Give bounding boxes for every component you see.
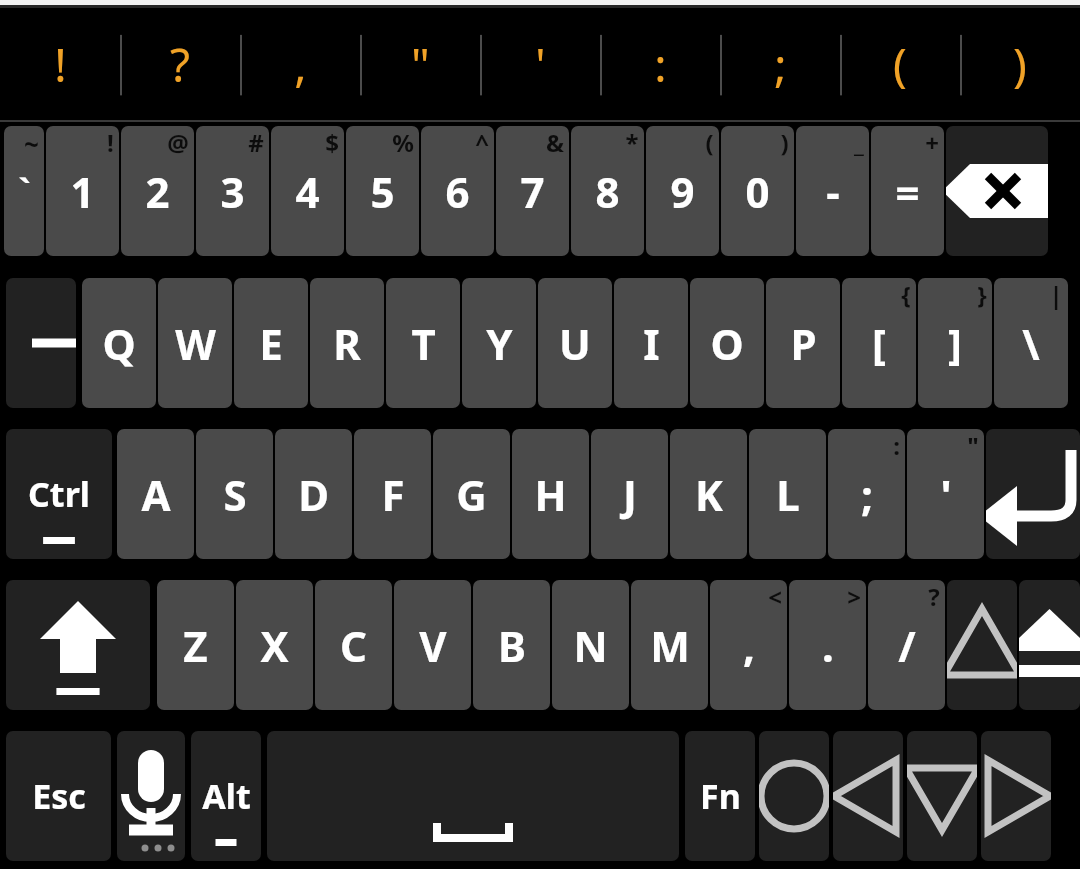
staticText: ~ bbox=[24, 126, 39, 161]
button[interactable]: Alt bbox=[191, 731, 261, 861]
button[interactable]: F bbox=[354, 429, 431, 559]
button[interactable]: $ bbox=[271, 126, 344, 256]
button[interactable]: " bbox=[907, 429, 984, 559]
staticText: T bbox=[411, 315, 436, 372]
button[interactable]: Tab bbox=[6, 278, 76, 408]
staticText: % bbox=[392, 126, 414, 159]
staticText: M bbox=[650, 617, 690, 674]
staticText: * bbox=[625, 126, 639, 159]
button[interactable]: V bbox=[394, 580, 471, 710]
button[interactable]: Up bbox=[947, 580, 1017, 710]
button[interactable]: Space bbox=[267, 731, 679, 861]
button[interactable]: A bbox=[117, 429, 194, 559]
button[interactable]: ) bbox=[721, 126, 794, 256]
staticText: B bbox=[498, 617, 526, 674]
button[interactable]: C bbox=[315, 580, 392, 710]
button[interactable]: Backspace bbox=[946, 126, 1048, 256]
staticText: H bbox=[534, 466, 567, 523]
staticText: I bbox=[643, 315, 660, 372]
button[interactable]: : bbox=[828, 429, 905, 559]
button[interactable]: } bbox=[918, 278, 992, 408]
button[interactable]: I bbox=[614, 278, 688, 408]
button[interactable]: T bbox=[386, 278, 460, 408]
button[interactable]: G bbox=[433, 429, 510, 559]
button[interactable]: & bbox=[496, 126, 569, 256]
button[interactable]: S bbox=[196, 429, 273, 559]
staticText: ; bbox=[774, 33, 787, 96]
button[interactable]: Caps lock bbox=[1019, 580, 1080, 710]
button[interactable]: " bbox=[360, 8, 480, 120]
button[interactable]: * bbox=[571, 126, 644, 256]
button[interactable]: H bbox=[512, 429, 589, 559]
button[interactable]: ( bbox=[840, 8, 960, 120]
button[interactable]: Fn bbox=[685, 731, 755, 861]
button[interactable]: ^ bbox=[421, 126, 494, 256]
staticText: A bbox=[141, 466, 171, 523]
staticText: , bbox=[294, 33, 307, 96]
button[interactable]: ; bbox=[720, 8, 840, 120]
button[interactable]: ) bbox=[960, 8, 1080, 120]
button[interactable]: ? bbox=[120, 8, 240, 120]
button[interactable]: Shift bbox=[6, 580, 150, 710]
button[interactable]: J bbox=[591, 429, 668, 559]
button[interactable]: ! bbox=[0, 8, 120, 120]
staticText: C bbox=[340, 617, 367, 674]
button[interactable]: { bbox=[842, 278, 916, 408]
button[interactable]: Voice input bbox=[117, 731, 185, 861]
button[interactable]: R bbox=[310, 278, 384, 408]
button[interactable]: | bbox=[994, 278, 1068, 408]
button[interactable]: Right bbox=[981, 731, 1051, 861]
staticText: J bbox=[623, 466, 637, 523]
button[interactable]: D bbox=[275, 429, 352, 559]
staticText: = bbox=[895, 163, 920, 220]
button[interactable]: ! bbox=[46, 126, 119, 256]
staticText: Ctrl bbox=[28, 471, 90, 517]
button[interactable]: Down bbox=[907, 731, 977, 861]
staticText: ' bbox=[940, 466, 952, 523]
button[interactable]: N bbox=[552, 580, 629, 710]
button[interactable]: : bbox=[600, 8, 720, 120]
staticText: ( bbox=[893, 33, 907, 96]
button[interactable]: @ bbox=[121, 126, 194, 256]
staticText: 2 bbox=[145, 163, 170, 220]
button[interactable]: U bbox=[538, 278, 612, 408]
button[interactable]: E bbox=[234, 278, 308, 408]
button[interactable]: Enter bbox=[986, 429, 1080, 559]
button[interactable]: L bbox=[749, 429, 826, 559]
button[interactable]: Y bbox=[462, 278, 536, 408]
button[interactable]: W bbox=[158, 278, 232, 408]
staticText: 1 bbox=[70, 163, 95, 220]
button[interactable]: ' bbox=[480, 8, 600, 120]
button[interactable]: Esc bbox=[6, 731, 111, 861]
staticText: ` bbox=[18, 168, 31, 214]
button[interactable]: , bbox=[240, 8, 360, 120]
button[interactable]: ( bbox=[646, 126, 719, 256]
button[interactable]: Ctrl bbox=[6, 429, 112, 559]
button[interactable]: K bbox=[670, 429, 747, 559]
button[interactable]: ? bbox=[868, 580, 945, 710]
staticText: ] bbox=[948, 315, 962, 372]
staticText: _ bbox=[854, 126, 864, 159]
button[interactable]: ~ bbox=[4, 126, 44, 256]
staticText: Z bbox=[183, 617, 208, 674]
button[interactable]: Q bbox=[82, 278, 156, 408]
staticText: ) bbox=[780, 126, 789, 159]
button[interactable]: < bbox=[710, 580, 787, 710]
button[interactable]: _ bbox=[796, 126, 869, 256]
staticText: & bbox=[546, 126, 564, 159]
staticText: | bbox=[1049, 278, 1063, 311]
staticText: - bbox=[826, 163, 840, 220]
button[interactable]: + bbox=[871, 126, 944, 256]
button[interactable]: P bbox=[766, 278, 840, 408]
button[interactable]: # bbox=[196, 126, 269, 256]
button[interactable]: Home bbox=[759, 731, 829, 861]
button[interactable]: B bbox=[473, 580, 550, 710]
button[interactable]: Z bbox=[157, 580, 234, 710]
button[interactable]: Left bbox=[833, 731, 903, 861]
button[interactable]: O bbox=[690, 278, 764, 408]
button[interactable]: X bbox=[236, 580, 313, 710]
button[interactable]: % bbox=[346, 126, 419, 256]
button[interactable]: > bbox=[789, 580, 866, 710]
staticText: K bbox=[695, 466, 723, 523]
button[interactable]: M bbox=[631, 580, 708, 710]
